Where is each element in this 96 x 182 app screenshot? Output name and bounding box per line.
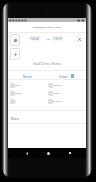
- button[interactable]: Back: [23, 148, 31, 158]
- button[interactable]: on call duty: [49, 98, 83, 104]
- staticText: Wednesday, April 14, 2021: [33, 26, 62, 29]
- button[interactable]: resting day: [49, 82, 83, 88]
- button[interactable]: vacation: [11, 90, 45, 96]
- button[interactable]: Delete entry: [76, 36, 82, 42]
- button[interactable]: Reset: [8, 71, 47, 80]
- button[interactable]: 7:35 PM: [53, 36, 62, 42]
- button[interactable]: Home: [44, 148, 52, 158]
- button[interactable]: Recent apps: [66, 148, 74, 158]
- staticText: 7:35 PM: [53, 37, 62, 41]
- staticText: 7:00 AM: [30, 37, 39, 41]
- staticText: vacation: [15, 92, 22, 94]
- staticText: Color: [59, 74, 68, 78]
- staticText: Total 12 hrs, 35 min.: [33, 62, 62, 66]
- staticText: day off: [15, 84, 21, 86]
- staticText: on call duty: [53, 100, 63, 102]
- button[interactable]: Add time entry: [10, 48, 20, 60]
- button[interactable]: ill: [11, 98, 45, 104]
- staticText: resting day: [53, 84, 62, 86]
- staticText: Notes: [11, 117, 20, 121]
- staticText: ill: [15, 100, 17, 102]
- button[interactable]: Color: [47, 71, 86, 80]
- button[interactable]: Stop: [10, 34, 20, 46]
- button[interactable]: training: [49, 90, 83, 96]
- button[interactable]: 7:00 AM: [30, 36, 39, 42]
- button[interactable]: day off: [11, 82, 45, 88]
- staticText: Reset: [23, 74, 32, 78]
- staticText: training: [53, 92, 60, 94]
